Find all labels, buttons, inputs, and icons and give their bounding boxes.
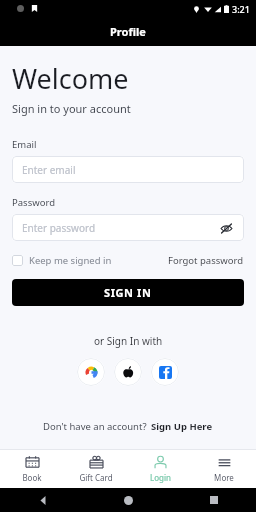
button[interactable]: Keep me signed in — [12, 254, 112, 267]
staticText: Enter email — [22, 163, 76, 177]
button[interactable]: Login — [128, 450, 192, 488]
staticText: Welcome — [12, 60, 129, 97]
staticText: Password — [12, 196, 55, 209]
staticText: Book — [22, 472, 42, 483]
staticText: SIGN IN — [104, 285, 152, 300]
staticText: Sign Up Here — [151, 420, 213, 433]
button[interactable]: More — [192, 450, 256, 488]
button[interactable]: Toggle password visibility — [218, 220, 234, 236]
staticText: Sign in to your account — [12, 101, 131, 116]
button[interactable]: Sign Up Here — [151, 420, 213, 433]
staticText: Don't have an account? — [43, 420, 147, 433]
staticText: Profile — [110, 24, 146, 39]
button[interactable]: Enter password — [12, 214, 244, 241]
button[interactable]: SIGN IN — [12, 279, 244, 306]
button[interactable]: Sign in with Apple — [114, 358, 142, 386]
staticText: 3:21 — [232, 3, 250, 15]
button[interactable]: Forgot password — [168, 254, 244, 267]
staticText: Forgot password — [168, 254, 244, 267]
staticText: Enter password — [22, 221, 96, 235]
button[interactable]: Gift Card — [64, 450, 128, 488]
staticText: or Sign In with — [94, 334, 163, 348]
staticText: Email — [12, 138, 37, 151]
staticText: Gift Card — [79, 472, 113, 483]
button[interactable]: Sign in with Facebook — [151, 358, 179, 386]
staticText: More — [214, 472, 234, 483]
staticText: Login — [150, 472, 171, 483]
button[interactable]: Book — [0, 450, 64, 488]
staticText: Keep me signed in — [29, 254, 112, 267]
button[interactable]: Sign in with Google — [77, 358, 105, 386]
button[interactable]: Enter email — [12, 156, 244, 183]
